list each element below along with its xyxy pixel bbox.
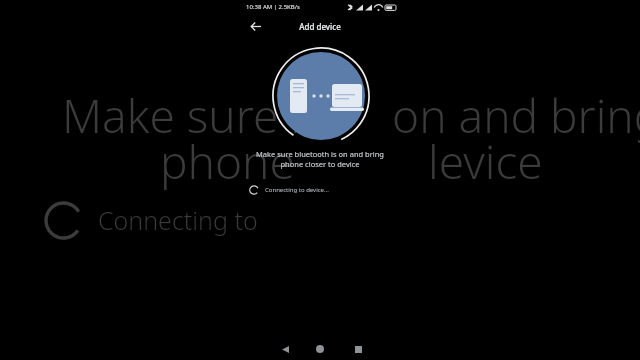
staticText: Connecting to [98,203,258,237]
button[interactable]: Connecting to device... [244,182,396,198]
staticText: Make sure bluetooth is on and bring phon… [244,149,396,169]
button[interactable]: Home [307,338,333,360]
staticText: on and bring [392,84,640,147]
staticText: Add device [299,21,341,32]
button[interactable]: Recents [345,338,371,360]
staticText: phone [160,130,295,193]
button[interactable]: Back [244,15,266,37]
staticText: levice [428,130,543,193]
staticText: Make sure b [62,84,318,147]
staticText: 10:38 AM | 2.5KB/s [246,3,300,11]
button[interactable]: Back [272,338,298,360]
staticText: Connecting to device... [265,186,329,194]
